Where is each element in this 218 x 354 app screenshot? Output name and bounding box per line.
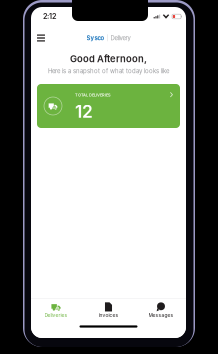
staticText: Sysco [86,34,104,42]
staticText: 12 [75,101,93,122]
staticText: Messages [148,312,173,318]
staticText: Delivery [110,34,130,42]
staticText: Deliveries [44,312,67,318]
staticText: 2:12 [43,12,56,21]
button[interactable]: Deliveries [32,302,80,319]
button[interactable]: Invoices [84,302,132,319]
staticText: Here is a snapshot of what today looks l… [48,67,169,75]
staticText: | [106,34,108,42]
button[interactable]: TOTAL DELIVERIES [37,84,180,128]
button[interactable]: Messages [137,302,185,319]
staticText: TOTAL DELIVERIES [75,92,111,97]
button[interactable]: Menu [34,31,48,45]
staticText: Good Afternoon, [70,53,147,64]
staticText: Invoices [98,312,118,318]
